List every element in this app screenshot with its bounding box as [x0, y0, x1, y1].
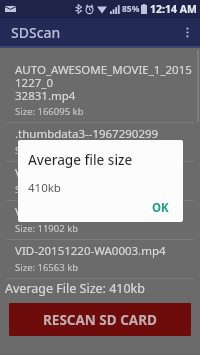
staticText: Size: 14021 kb — [15, 183, 79, 196]
staticText: Size: 16563 kb — [15, 261, 79, 274]
button[interactable]: RESCAN SD CARD — [9, 303, 191, 336]
staticText: 85% — [122, 3, 140, 15]
staticText: Average file size — [28, 151, 133, 169]
staticText: VID-20151220-WA0005.mp4 — [15, 165, 166, 181]
staticText: AUTO_AWESOME_MOVIE_1_20151227_0 32831.mp… — [15, 62, 192, 103]
button[interactable]: VID-20151220-WA0005.mp4 — [0, 162, 200, 200]
staticText: .thumbdata3--1967290299 — [15, 126, 159, 142]
button[interactable]: AUTO_AWESOME_MOVIE_1_20151227_0 32831.mp… — [0, 59, 200, 122]
staticText: VID-20151220-WA0004.mp4 — [15, 204, 166, 220]
staticText: 12:14 AM — [150, 2, 197, 16]
button[interactable]: .thumbdata3--1967290299 — [0, 123, 200, 161]
staticText: SDScan — [11, 23, 61, 42]
button[interactable]: VID-20151220-WA0003.mp4 — [0, 240, 200, 278]
button[interactable]: More options — [174, 19, 200, 45]
staticText: Size: 103029 kb — [15, 144, 84, 157]
staticText: Average File Size: 410kb — [5, 280, 145, 296]
staticText: RESCAN SD CARD — [43, 311, 157, 329]
button[interactable]: VID-20151220-WA0004.mp4 — [0, 201, 200, 239]
staticText: VID-20151220-WA0003.mp4 — [15, 243, 166, 259]
staticText: OK — [152, 200, 169, 215]
button[interactable]: OK — [144, 196, 177, 219]
staticText: 410kb — [28, 180, 61, 196]
staticText: Size: 11902 kb — [15, 222, 79, 235]
staticText: Size: 166095 kb — [15, 105, 84, 118]
